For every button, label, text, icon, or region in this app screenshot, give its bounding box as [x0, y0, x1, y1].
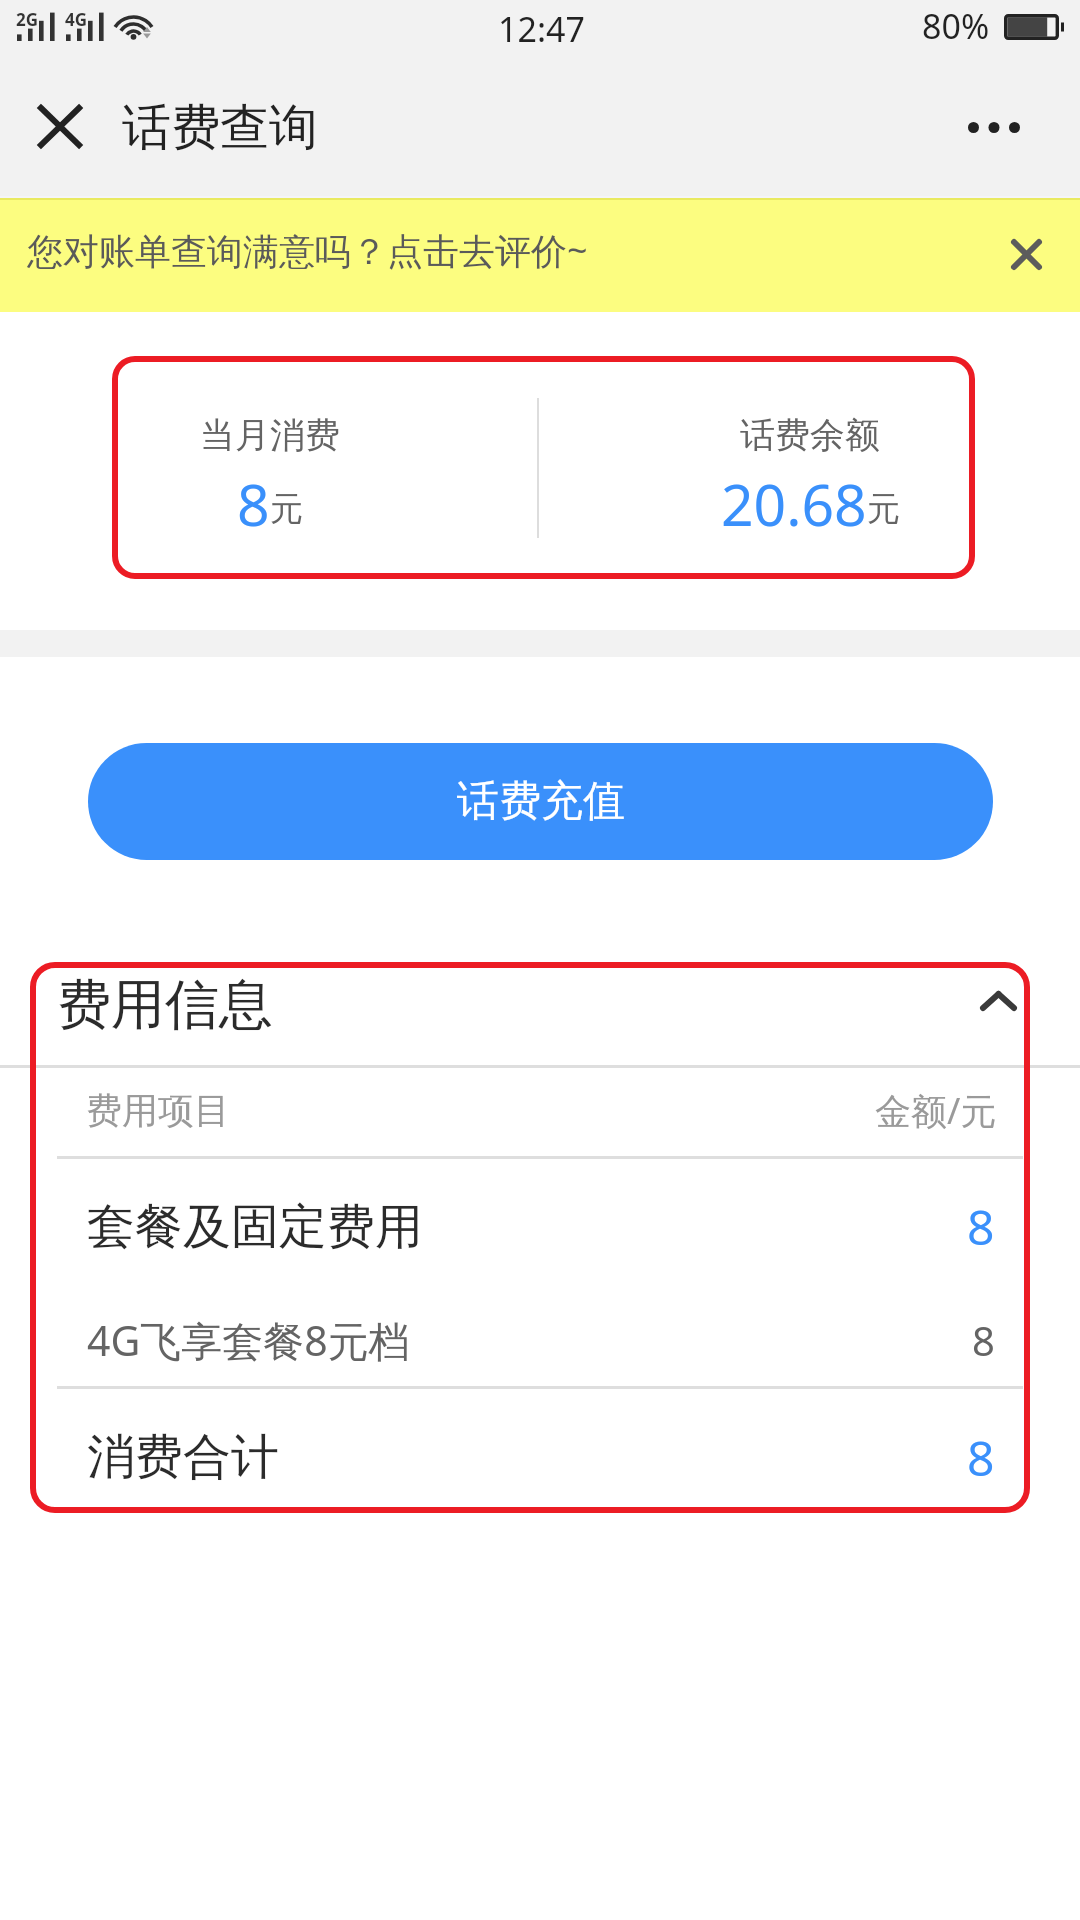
staticText: 话费充值 [457, 775, 625, 828]
staticText: 12:47 [498, 6, 585, 52]
staticText: 80% [922, 3, 990, 49]
button[interactable]: More options [954, 87, 1034, 167]
staticText: 2G [16, 8, 39, 31]
staticText: 话费余额 [740, 413, 880, 457]
staticText: 4G飞享套餐8元档 [87, 1312, 410, 1368]
staticText: 套餐及固定费用 [87, 1197, 423, 1257]
staticText: 8 [967, 1194, 995, 1259]
button[interactable]: Dismiss [991, 219, 1061, 289]
staticText: 8 [972, 1313, 995, 1367]
button[interactable]: 您对账单查询满意吗？点击去评价~ [0, 198, 1080, 312]
button[interactable]: 话费充值 [88, 743, 993, 860]
button[interactable]: 套餐及固定费用 [0, 1159, 1080, 1294]
staticText: 消费合计 [87, 1427, 279, 1487]
staticText: 元 [867, 488, 900, 530]
staticText: 费用信息 [57, 971, 273, 1039]
staticText: 话费查询 [122, 97, 318, 159]
button[interactable]: 费用信息 [0, 962, 1080, 1066]
button[interactable]: 消费合计 [0, 1397, 1080, 1517]
button[interactable]: 当月消费 [0, 356, 1080, 579]
staticText: 当月消费 [200, 413, 340, 457]
button[interactable]: Close [20, 86, 100, 166]
staticText: 8 [237, 465, 270, 543]
staticText: 金额/元 [875, 1086, 997, 1135]
staticText: 4G [65, 8, 88, 31]
staticText: 8 [967, 1425, 995, 1490]
staticText: 20.68 [721, 465, 867, 543]
staticText: 元 [270, 488, 303, 530]
staticText: 您对账单查询满意吗？点击去评价~ [27, 226, 588, 275]
staticText: 费用项目 [86, 1088, 230, 1133]
